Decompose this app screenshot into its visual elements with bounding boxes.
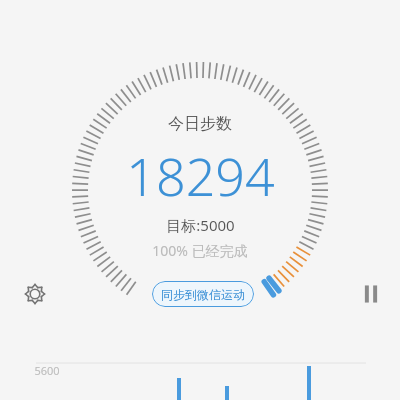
button[interactable]: Pause [352, 275, 390, 313]
button[interactable]: Settings [16, 275, 54, 313]
staticText: 同步到微信运动 [161, 287, 245, 302]
button[interactable]: 同步到微信运动 [152, 281, 254, 307]
staticText: 18294 [126, 140, 275, 211]
staticText: 目标:5000 [166, 215, 235, 235]
staticText: 5600 [34, 363, 60, 378]
staticText: 100% 已经完成 [152, 241, 248, 260]
staticText: 今日步数 [168, 114, 232, 134]
